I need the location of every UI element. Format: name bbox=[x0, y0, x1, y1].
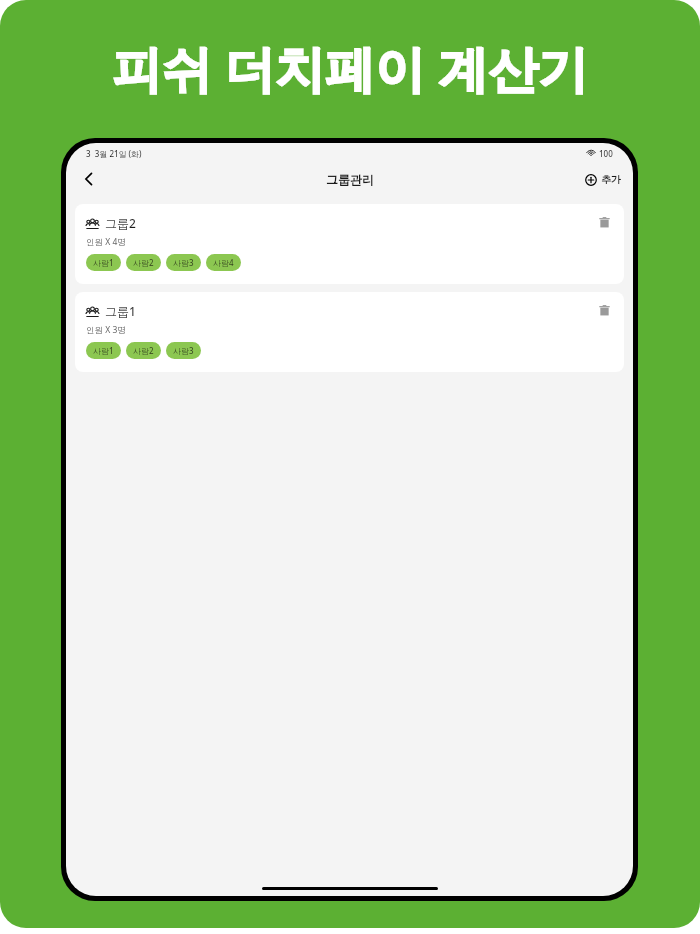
staticText: 사람4 bbox=[213, 257, 234, 268]
button[interactable]: 뒤로 bbox=[74, 164, 104, 194]
button[interactable]: 그룹1 bbox=[75, 292, 624, 372]
staticText: 사람2 bbox=[133, 257, 154, 268]
staticText: 그룹관리 bbox=[326, 172, 374, 187]
staticText: 사람3 bbox=[173, 345, 194, 356]
button[interactable]: 추가 bbox=[585, 173, 621, 186]
staticText: 추가 bbox=[601, 173, 621, 186]
staticText: 사람3 bbox=[173, 257, 194, 268]
staticText: 그룹2 bbox=[105, 215, 136, 231]
button[interactable]: 그룹2 bbox=[75, 204, 624, 284]
staticText: 100 bbox=[599, 148, 613, 159]
staticText: 사람2 bbox=[133, 345, 154, 356]
button[interactable]: 삭제 bbox=[592, 298, 616, 322]
staticText: 사람1 bbox=[93, 345, 114, 356]
staticText: 인원 X 3명 bbox=[86, 324, 126, 336]
staticText: 사람1 bbox=[93, 257, 114, 268]
staticText: 피쉬 더치페이 계산기 bbox=[112, 34, 588, 102]
staticText: 3 3월 21일 (화) bbox=[86, 148, 142, 159]
button[interactable]: 삭제 bbox=[592, 210, 616, 234]
staticText: 인원 X 4명 bbox=[86, 236, 126, 248]
staticText: 그룹1 bbox=[105, 303, 136, 319]
